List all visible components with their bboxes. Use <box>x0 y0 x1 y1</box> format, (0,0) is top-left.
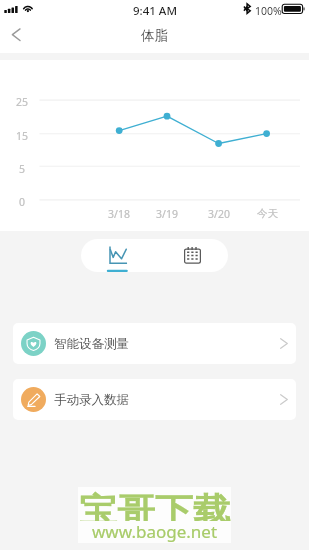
staticText: 3/19 <box>156 207 178 219</box>
staticText: 100% <box>255 4 282 18</box>
button[interactable]: Back <box>0 22 33 53</box>
button[interactable]: Chart view <box>81 239 154 272</box>
staticText: 今天 <box>257 207 278 219</box>
button[interactable]: Calendar view <box>154 239 228 272</box>
staticText: 体脂 <box>141 27 168 44</box>
staticText: 手动录入数据 <box>54 392 129 408</box>
staticText: 5 <box>19 162 26 174</box>
staticText: 宝哥下载 <box>79 489 231 521</box>
staticText: 9:41 AM <box>133 3 177 19</box>
button[interactable]: 手动录入数据 <box>13 379 296 420</box>
staticText: 15 <box>16 129 29 141</box>
staticText: www.baoge.net <box>92 520 218 543</box>
staticText: 0 <box>19 195 26 207</box>
staticText: 智能设备测量 <box>54 336 129 352</box>
staticText: 25 <box>16 95 29 107</box>
button[interactable]: 智能设备测量 <box>13 323 296 364</box>
staticText: 3/18 <box>108 207 130 219</box>
staticText: 3/20 <box>208 207 230 219</box>
